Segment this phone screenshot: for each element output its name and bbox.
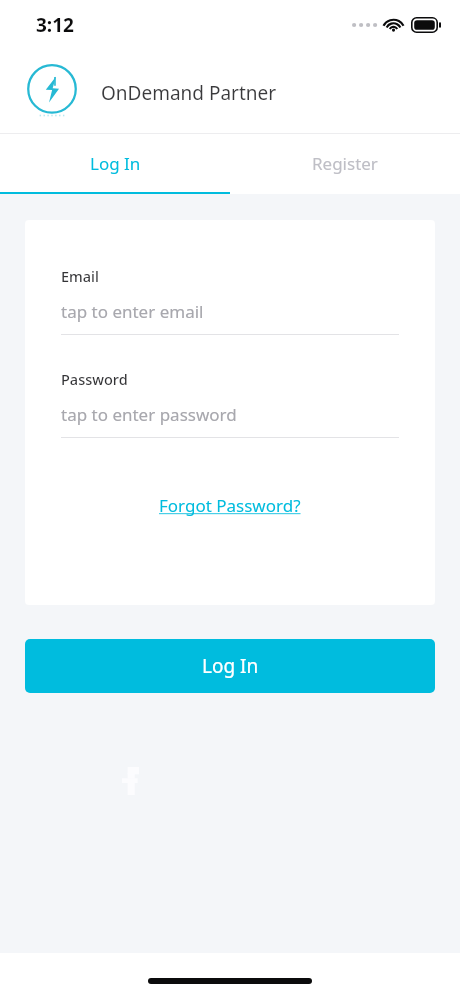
staticText: tap to enter email <box>61 300 204 323</box>
staticText: Log In <box>90 152 141 175</box>
staticText: OnDemand Partner <box>101 80 277 106</box>
staticText: Email <box>61 266 99 286</box>
staticText: Log In <box>202 653 259 679</box>
staticText: 3:12 <box>36 12 74 38</box>
button[interactable]: Email <box>25 266 435 335</box>
staticText: Forgot Password? <box>159 494 301 517</box>
staticText: Register <box>312 152 378 175</box>
button[interactable]: Password <box>25 369 435 438</box>
button[interactable]: Log In <box>25 639 435 693</box>
button[interactable]: Register <box>230 134 460 192</box>
button[interactable]: Forgot Password? <box>151 488 309 523</box>
staticText: Password <box>61 369 128 389</box>
button[interactable]: Log In <box>0 134 230 192</box>
staticText: tap to enter password <box>61 403 237 426</box>
